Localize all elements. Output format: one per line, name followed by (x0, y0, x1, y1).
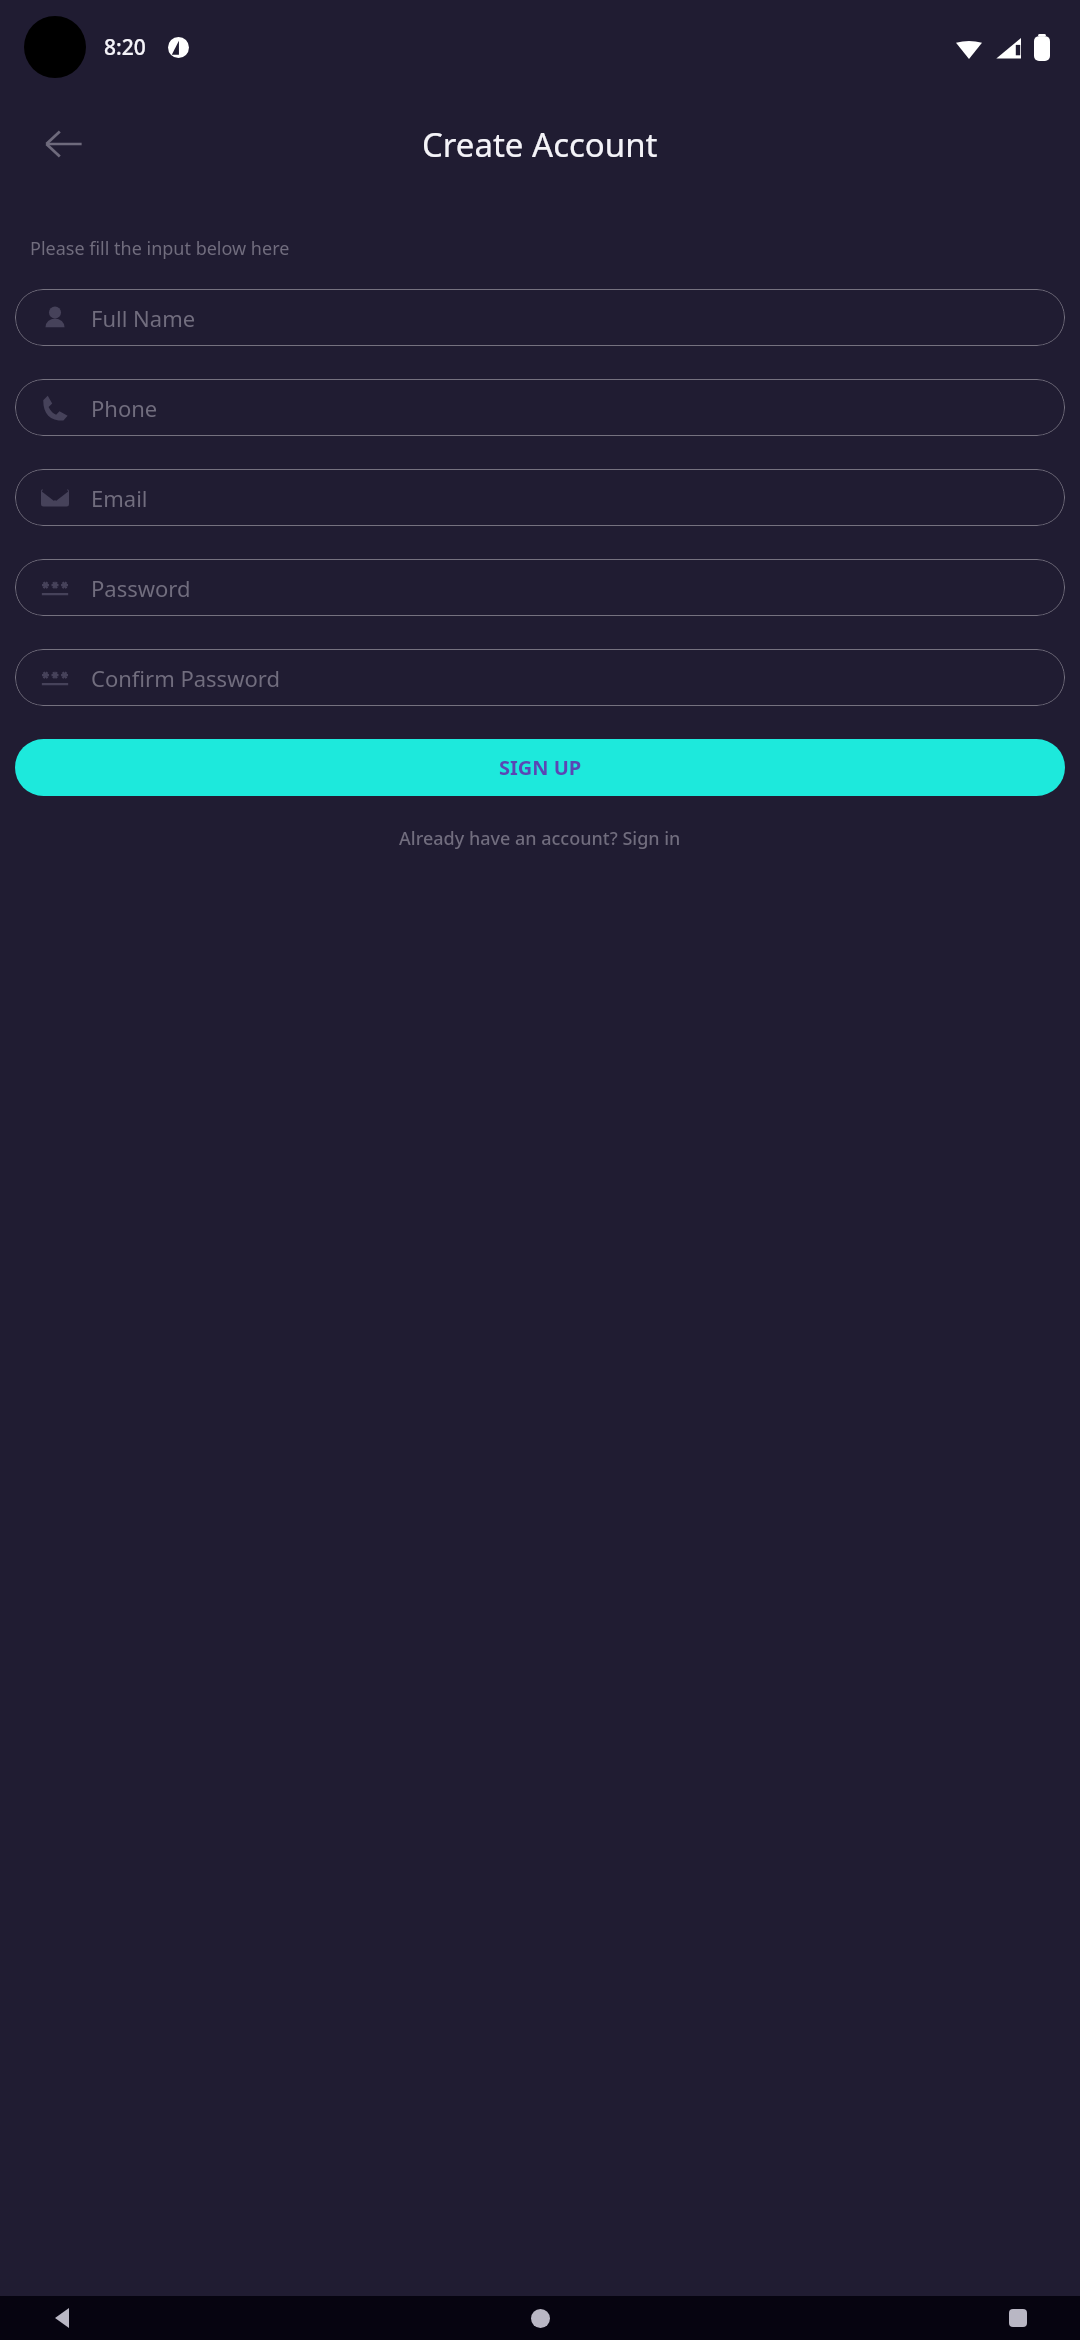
staticText: 8:20 (104, 33, 146, 62)
button[interactable]: Phone (15, 379, 1065, 436)
staticText: Please fill the input below here (30, 236, 290, 261)
staticText: Create Account (422, 122, 658, 167)
staticText: Phone (91, 393, 158, 423)
button[interactable]: Back (28, 108, 100, 180)
staticText: Confirm Password (91, 663, 280, 693)
staticText: Password (91, 573, 191, 603)
button[interactable]: Back (40, 2296, 84, 2340)
button[interactable]: Confirm Password (15, 649, 1065, 706)
button[interactable]: Already have an account? Sign in (387, 820, 693, 857)
button[interactable]: SIGN UP (15, 739, 1065, 796)
button[interactable]: Full Name (15, 289, 1065, 346)
staticText: SIGN UP (499, 754, 582, 781)
button[interactable]: Email (15, 469, 1065, 526)
staticText: Email (91, 483, 148, 513)
button[interactable]: Password (15, 559, 1065, 616)
staticText: Full Name (91, 303, 196, 333)
button[interactable]: Recents (996, 2296, 1040, 2340)
button[interactable]: Home (518, 2296, 562, 2340)
